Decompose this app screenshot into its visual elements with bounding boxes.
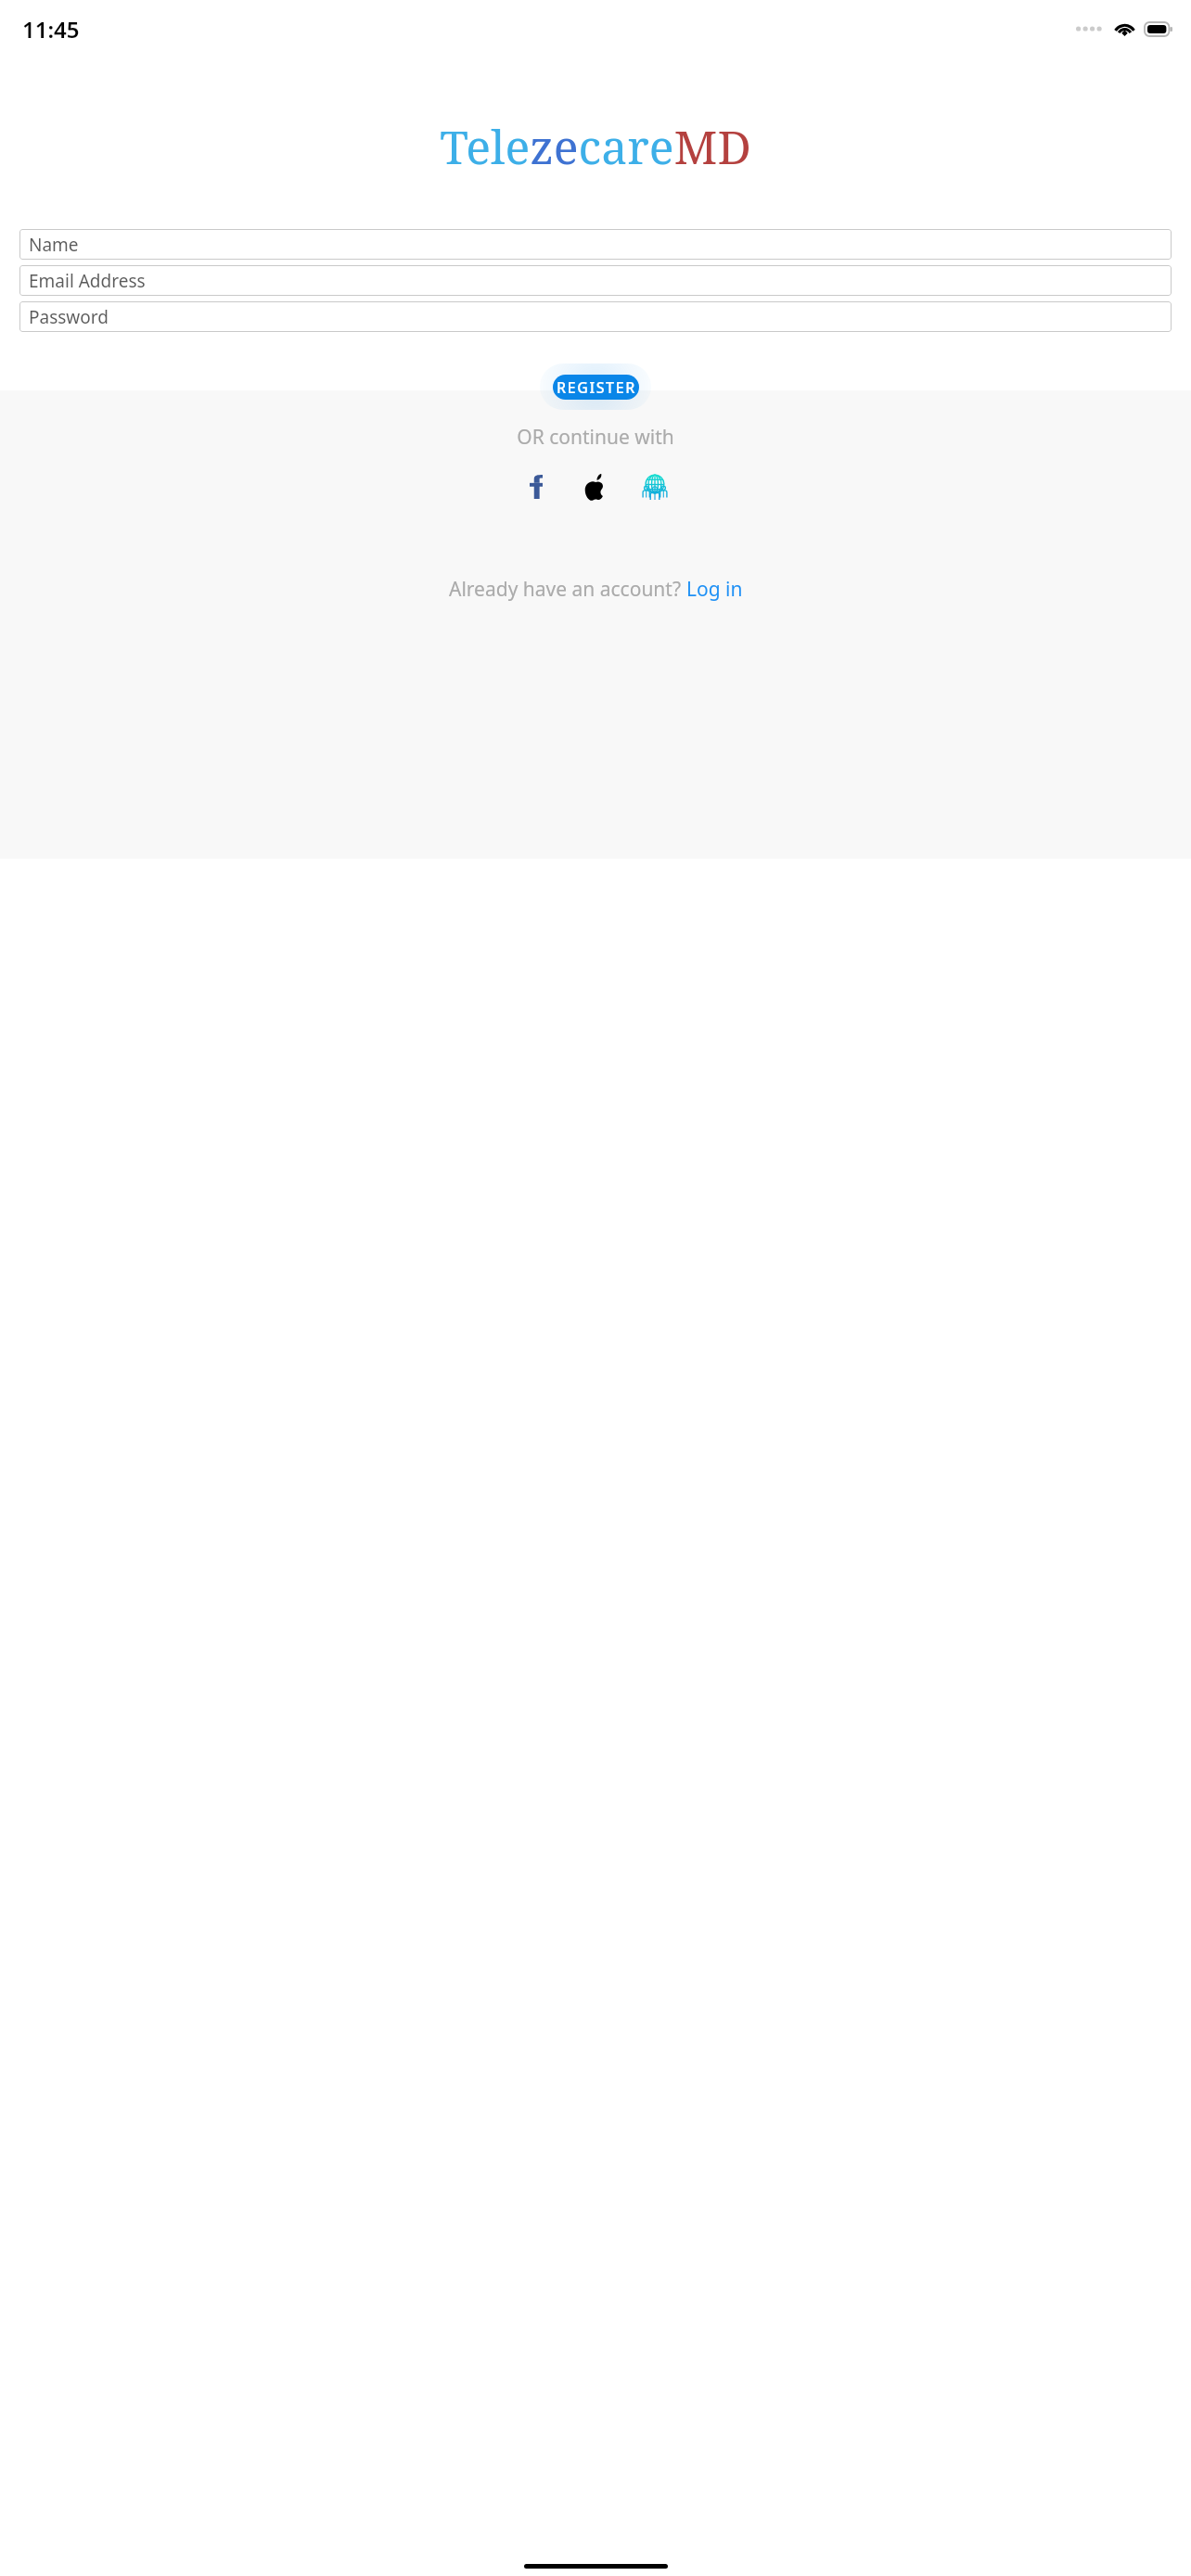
- button[interactable]: Email Address: [19, 265, 1172, 296]
- button[interactable]: Log in: [686, 576, 743, 603]
- staticText: Name: [29, 233, 79, 257]
- staticText: Already have an account?: [449, 576, 686, 603]
- staticText: OR continue with: [0, 424, 1191, 451]
- button[interactable]: Continue with Apple: [575, 466, 616, 507]
- staticText: Log in: [686, 576, 743, 603]
- staticText: REGISTER: [557, 377, 636, 398]
- staticText: Email Address: [29, 269, 146, 293]
- staticText: TelezecareMD: [0, 115, 1191, 178]
- button[interactable]: Name: [19, 229, 1172, 260]
- button[interactable]: REGISTER: [553, 375, 639, 400]
- staticText: Password: [29, 305, 109, 329]
- staticText: 11:45: [22, 14, 80, 45]
- button[interactable]: Continue with Telezecare network: [634, 466, 675, 507]
- button[interactable]: Password: [19, 301, 1172, 332]
- button[interactable]: Continue with Facebook: [516, 466, 557, 507]
